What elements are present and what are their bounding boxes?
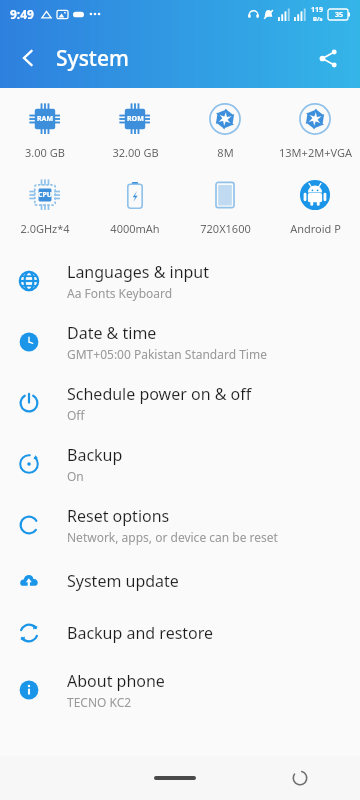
staticText: ROM [127, 114, 144, 124]
button[interactable]: Share [306, 36, 350, 80]
button[interactable]: 13M+2M+VGA [270, 100, 360, 160]
staticText: 32.00 GB [112, 145, 159, 160]
staticText: Aa Fonts Keyboard [67, 285, 173, 301]
staticText: RAM [37, 114, 54, 124]
staticText: System [56, 44, 129, 73]
staticText: Backup [67, 444, 123, 466]
staticText: Android P [290, 221, 341, 236]
staticText: 9:49 [10, 6, 34, 22]
button[interactable]: 8M [180, 100, 270, 160]
staticText: Languages & input [67, 261, 210, 283]
button[interactable]: Languages & input [0, 250, 360, 311]
staticText: 13M+2M+VGA [279, 145, 352, 160]
button[interactable]: About phone [0, 659, 360, 720]
staticText: About phone [67, 670, 165, 692]
staticText: 119 [311, 5, 324, 15]
staticText: GMT+05:00 Pakistan Standard Time [67, 346, 267, 362]
staticText: 35 [335, 10, 344, 20]
staticText: 720X1600 [200, 221, 251, 236]
button[interactable]: RAM [0, 100, 90, 160]
button[interactable]: ROM [90, 100, 180, 160]
button[interactable]: CPU [0, 176, 90, 236]
button[interactable]: 4000mAh [90, 176, 180, 236]
staticText: 2.0GHz*4 [20, 221, 70, 236]
staticText: Date & time [67, 322, 157, 344]
button[interactable]: Back [282, 760, 318, 796]
button[interactable]: Backup and restore [0, 607, 360, 659]
staticText: CPU [38, 190, 53, 200]
button[interactable]: 720X1600 [180, 176, 270, 236]
staticText: Network, apps, or device can be reset [67, 529, 278, 545]
button[interactable]: System update [0, 555, 360, 607]
button[interactable]: Schedule power on & off [0, 372, 360, 433]
staticText: TECNO KC2 [67, 694, 132, 710]
staticText: Backup and restore [67, 622, 214, 644]
staticText: Reset options [67, 505, 170, 527]
staticText: 4000mAh [110, 221, 160, 236]
staticText: 8M [217, 145, 234, 160]
button[interactable]: Android P [270, 176, 360, 236]
staticText: On [67, 468, 84, 484]
button[interactable]: Reset options [0, 494, 360, 555]
button[interactable]: Back [6, 36, 50, 80]
button[interactable]: Backup [0, 433, 360, 494]
staticText: System update [67, 570, 179, 592]
button[interactable]: Home [145, 763, 205, 793]
staticText: 3.00 GB [25, 145, 65, 160]
button[interactable]: Date & time [0, 311, 360, 372]
staticText: B/s [313, 15, 323, 23]
staticText: Schedule power on & off [67, 383, 252, 405]
staticText: Off [67, 407, 85, 423]
